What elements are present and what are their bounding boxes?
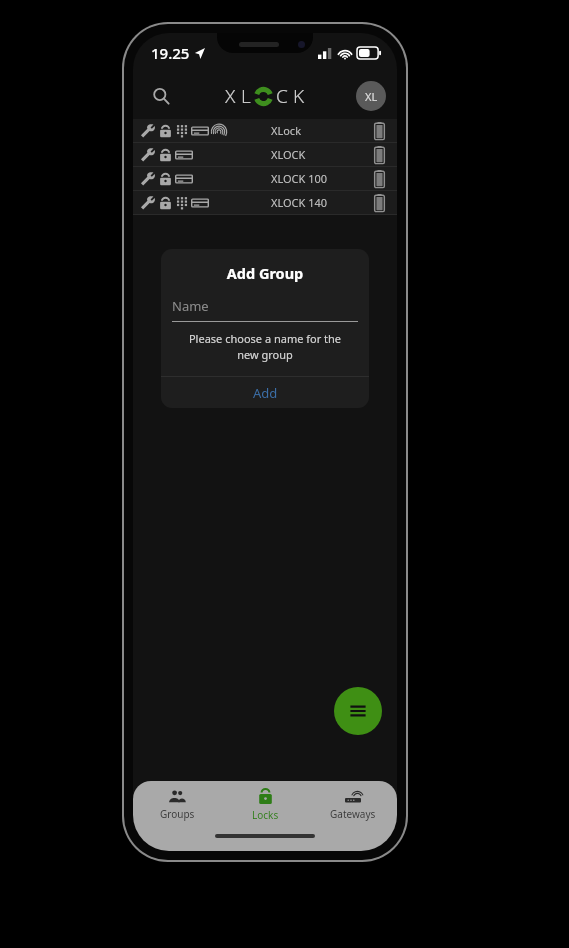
button[interactable]: XLOCK xyxy=(133,143,397,166)
button[interactable]: Add xyxy=(161,377,369,408)
button[interactable]: Search xyxy=(143,78,179,114)
staticText: L xyxy=(241,83,251,109)
button[interactable]: XLock xyxy=(133,119,397,142)
staticText: Add xyxy=(253,384,278,402)
staticText: Add Group xyxy=(161,263,369,283)
staticText: XLOCK xyxy=(271,147,306,162)
staticText: Groups xyxy=(160,807,195,821)
button[interactable]: XLOCK 100 xyxy=(133,167,397,190)
staticText: XLOCK 140 xyxy=(271,195,328,210)
staticText: XLOCK 100 xyxy=(271,171,328,186)
button[interactable]: Menu xyxy=(334,687,382,735)
staticText: K xyxy=(293,83,305,109)
button[interactable]: XL xyxy=(356,81,386,111)
button[interactable]: Gateways xyxy=(309,781,397,829)
staticText: C xyxy=(276,83,288,109)
staticText: XLock xyxy=(271,123,302,138)
staticText: Locks xyxy=(252,808,279,822)
staticText: Name xyxy=(172,297,209,315)
staticText: 19.25 xyxy=(151,43,190,63)
staticText: Gateways xyxy=(330,807,376,821)
button[interactable]: Locks xyxy=(221,781,309,829)
button[interactable]: XLOCK 140 xyxy=(133,191,397,214)
button[interactable]: Groups xyxy=(133,781,221,829)
staticText: XL xyxy=(365,89,378,104)
staticText: Please choose a name for the new group xyxy=(185,331,345,362)
staticText: X xyxy=(225,83,236,109)
